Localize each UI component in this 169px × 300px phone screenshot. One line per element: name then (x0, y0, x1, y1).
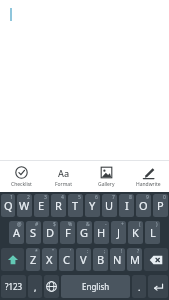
staticText: ' (70, 248, 72, 255)
staticText: @ (17, 221, 22, 228)
button[interactable]: Enter (148, 275, 168, 298)
staticText: 0 (163, 194, 166, 201)
staticText: S (30, 225, 37, 240)
staticText: * (35, 248, 38, 255)
button[interactable]: " (42, 248, 57, 271)
staticText: % (68, 221, 73, 228)
button[interactable]: & (77, 221, 92, 244)
staticText: M (130, 252, 140, 267)
button[interactable]: ; (93, 248, 108, 271)
staticText: Handwrite (136, 181, 161, 188)
staticText: , (34, 281, 37, 293)
staticText: L (150, 225, 156, 240)
staticText: E (38, 198, 45, 213)
staticText: Z (30, 252, 37, 267)
staticText: Format (55, 181, 72, 188)
button[interactable]: 6 (85, 194, 100, 217)
staticText: ; (104, 248, 106, 255)
staticText: D (46, 225, 55, 240)
button[interactable]: Aa (42, 163, 84, 191)
button[interactable]: ? (127, 248, 142, 271)
button[interactable]: 7 (102, 194, 117, 217)
staticText: 5 (78, 194, 81, 201)
staticText: ?123 (5, 281, 23, 292)
staticText: 9 (146, 194, 149, 201)
button[interactable]: Gallery (85, 163, 127, 191)
staticText: ) (156, 221, 158, 228)
button[interactable]: 3 (34, 194, 49, 217)
button[interactable]: 8 (119, 194, 134, 217)
button[interactable]: - (94, 221, 109, 244)
staticText: U (105, 198, 114, 213)
staticText: W (19, 198, 30, 213)
staticText: : (87, 248, 89, 255)
staticText: V (80, 252, 87, 267)
button[interactable]: 5 (68, 194, 83, 217)
staticText: 4 (61, 194, 64, 201)
staticText: + (121, 221, 124, 228)
staticText: B (97, 252, 105, 267)
button[interactable]: , (28, 275, 42, 298)
staticText: Y (89, 198, 96, 213)
button[interactable]: + (111, 221, 126, 244)
staticText: 7 (112, 194, 115, 201)
staticText: I (125, 198, 129, 213)
button[interactable]: 2 (17, 194, 32, 217)
button[interactable]: * (26, 248, 40, 271)
staticText: Checklist (11, 181, 32, 188)
button[interactable]: ) (145, 221, 160, 244)
button[interactable]: 0 (153, 194, 168, 217)
staticText: H (97, 225, 106, 240)
staticText: - (105, 221, 107, 228)
staticText: C (63, 252, 70, 267)
staticText: 6 (95, 194, 98, 201)
staticText: K (132, 225, 139, 240)
button[interactable]: @ (9, 221, 24, 244)
staticText: X (46, 252, 53, 267)
button[interactable]: . (132, 275, 146, 298)
staticText: # (35, 221, 39, 228)
staticText: . (138, 281, 141, 293)
staticText: F (65, 225, 71, 240)
button[interactable]: 4 (51, 194, 66, 217)
button[interactable]: Checklist (0, 163, 42, 191)
staticText: " (52, 248, 55, 255)
staticText: ( (139, 221, 141, 228)
staticText: O (139, 198, 148, 213)
staticText: ! (121, 248, 123, 255)
button[interactable]: ' (59, 248, 74, 271)
staticText: English (82, 281, 110, 292)
button[interactable]: # (26, 221, 41, 244)
staticText: P (157, 198, 164, 213)
staticText: J (117, 225, 121, 240)
staticText: T (72, 198, 79, 213)
button[interactable]: Change language (44, 275, 59, 298)
button[interactable]: : (76, 248, 91, 271)
button[interactable]: ?123 (1, 275, 26, 298)
staticText: ? (137, 248, 140, 255)
staticText: N (113, 252, 122, 267)
staticText: A (13, 225, 21, 240)
staticText: Gallery (98, 181, 115, 188)
staticText: $ (53, 221, 56, 228)
staticText: 3 (44, 194, 47, 201)
button[interactable]: ! (110, 248, 125, 271)
staticText: Q (4, 198, 13, 213)
button[interactable]: Handwrite (127, 163, 169, 191)
staticText: G (80, 225, 89, 240)
staticText: 8 (129, 194, 132, 201)
staticText: 1 (10, 194, 13, 201)
staticText: R (55, 198, 62, 213)
button[interactable]: Backspace (144, 248, 168, 271)
button[interactable]: English (61, 275, 130, 298)
button[interactable]: $ (43, 221, 58, 244)
button[interactable]: ( (128, 221, 143, 244)
button[interactable]: % (60, 221, 75, 244)
button[interactable]: 1 (1, 194, 15, 217)
staticText: Aa (58, 167, 70, 179)
staticText: & (86, 221, 90, 228)
staticText: 2 (27, 194, 30, 201)
button[interactable]: Shift (1, 248, 24, 271)
button[interactable]: 9 (136, 194, 151, 217)
